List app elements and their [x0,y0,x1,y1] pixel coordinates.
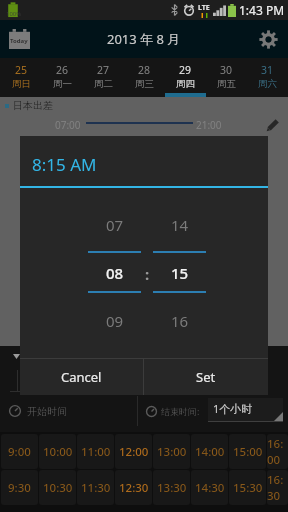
staticText: 周日 [12,78,31,90]
button[interactable]: 15:00 [229,434,266,469]
staticText: 开始时间 [27,405,67,418]
staticText: 26 [56,63,69,77]
button[interactable]: Today [4,24,34,54]
staticText: 07:00 [55,118,81,132]
staticText: 12:00 [119,444,149,460]
button[interactable]: Edit [262,114,284,136]
staticText: 25 [15,63,28,77]
staticText: 周一 [53,78,72,90]
staticText: 8:15 AM [32,153,97,176]
staticText: 结束时间: [161,405,200,417]
staticText: 周二 [94,78,113,90]
staticText: 10:00 [43,444,73,460]
button[interactable]: 28 [124,58,165,97]
staticText: 16:00 [267,436,288,468]
staticText: 16 [153,311,206,331]
staticText: 周五 [217,78,236,90]
staticText: 14 [153,215,206,235]
button[interactable]: 30 [206,58,247,97]
staticText: 100% [6,10,22,18]
staticText: Set [196,368,216,386]
button[interactable]: Settings [254,25,282,53]
button[interactable]: 27 [83,58,124,97]
button[interactable]: 1个小时 [208,398,283,422]
staticText: 08 [88,263,141,283]
button[interactable]: 14:00 [191,434,228,469]
staticText: 09 [88,311,141,331]
staticText: 周三 [135,78,154,90]
staticText: 9:30 [8,480,31,496]
button[interactable]: 10:30 [39,470,76,505]
staticText: Today [10,37,28,45]
staticText: 11:00 [81,444,111,460]
button[interactable]: 9:00 [1,434,38,469]
button[interactable]: 10:00 [39,434,76,469]
button[interactable]: Cancel [20,359,143,395]
button[interactable]: 11:30 [77,470,114,505]
staticText: 9:00 [8,444,31,460]
staticText: 16:30 [267,472,288,504]
button[interactable]: 16:30 [267,470,288,505]
staticText: 日本出差 [13,99,53,112]
staticText: 1个小时 [213,401,253,416]
button[interactable]: 16:00 [267,434,288,469]
staticText: 07 [88,215,141,235]
staticText: 28 [138,63,151,77]
button[interactable]: 31 [247,58,288,97]
staticText: 1:43 PM [239,2,285,18]
button[interactable]: 29 [165,58,206,97]
staticText: 10:30 [43,480,73,496]
button[interactable]: 13:00 [153,434,190,469]
button[interactable]: 12:30 [115,470,152,505]
button[interactable]: 26 [42,58,83,97]
button[interactable]: 日本出差 [0,97,288,114]
staticText: 15:00 [233,444,263,460]
button[interactable]: 11:00 [77,434,114,469]
staticText: 12:30 [119,480,149,496]
button[interactable]: 13:30 [153,470,190,505]
staticText: 14:00 [195,444,225,460]
staticText: 21:00 [196,118,222,132]
staticText: 13:30 [157,480,187,496]
staticText: 30 [220,63,233,77]
staticText: 15:30 [233,480,263,496]
button[interactable]: 15:30 [229,470,266,505]
staticText: 29 [179,63,192,77]
staticText: 15 [153,263,206,283]
staticText: 14:30 [195,480,225,496]
staticText: Cancel [61,368,102,386]
button[interactable]: 12:00 [115,434,152,469]
staticText: 27 [97,63,110,77]
button[interactable]: 14:30 [191,470,228,505]
button[interactable]: 开始时间 [0,396,137,426]
button[interactable]: 9:30 [1,470,38,505]
staticText: 11:30 [81,480,111,496]
staticText: 31 [261,63,274,77]
button[interactable]: 结束时间: [137,396,288,426]
button[interactable]: 25 [0,58,42,97]
staticText: 周四 [176,78,195,90]
staticText: 13:00 [157,444,187,460]
staticText: 周六 [258,78,277,90]
button[interactable]: Set [144,359,268,395]
staticText: 2013 年 8 月 [107,30,181,48]
staticText: : [145,264,150,284]
staticText: LTE [198,3,210,13]
